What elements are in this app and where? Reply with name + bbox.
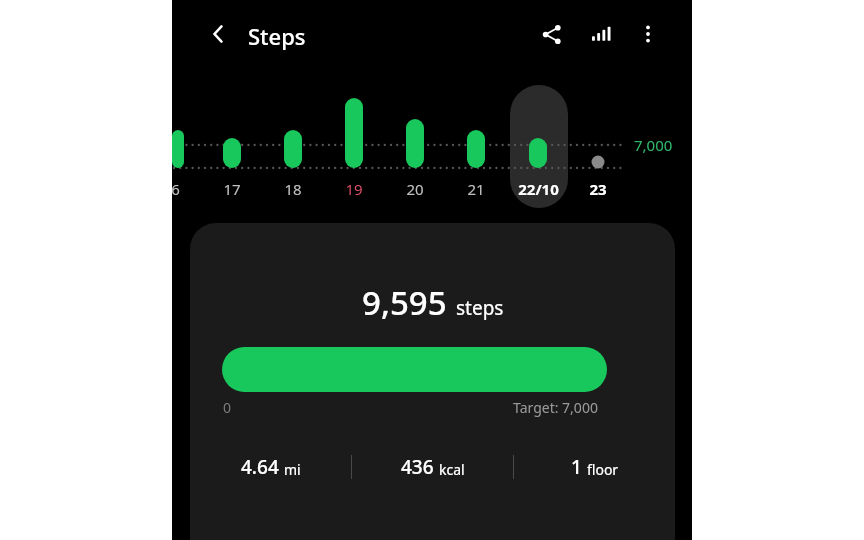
button[interactable]: Chart view <box>582 16 618 52</box>
button[interactable]: Share <box>533 16 569 52</box>
button[interactable]: 9,595 <box>190 223 675 540</box>
staticText: 22/10 <box>518 179 559 199</box>
staticText: 6 <box>171 179 180 199</box>
button[interactable]: 1 <box>514 454 675 480</box>
staticText: mi <box>284 460 301 479</box>
staticText: 0 <box>223 398 232 417</box>
button[interactable]: More options <box>630 16 666 52</box>
button[interactable]: Back <box>200 16 236 52</box>
staticText: 17 <box>223 179 241 199</box>
button[interactable] <box>510 85 568 208</box>
staticText: 20 <box>406 179 424 199</box>
staticText: kcal <box>439 460 465 479</box>
staticText: 7,000 <box>634 135 673 155</box>
staticText: 436 <box>401 454 434 480</box>
staticText: 9,595 <box>362 280 447 325</box>
staticText: Steps <box>248 21 306 51</box>
staticText: 1 <box>571 454 582 480</box>
staticText: floor <box>587 460 619 479</box>
staticText: 23 <box>589 179 607 199</box>
button[interactable]: 436 <box>352 454 513 480</box>
staticText: 19 <box>345 179 363 199</box>
staticText: 4.64 <box>241 454 279 480</box>
staticText: Target: 7,000 <box>513 398 598 417</box>
staticText: 18 <box>284 179 302 199</box>
button[interactable]: 4.64 <box>190 454 351 480</box>
staticText: steps <box>456 295 504 321</box>
staticText: 21 <box>467 179 485 199</box>
